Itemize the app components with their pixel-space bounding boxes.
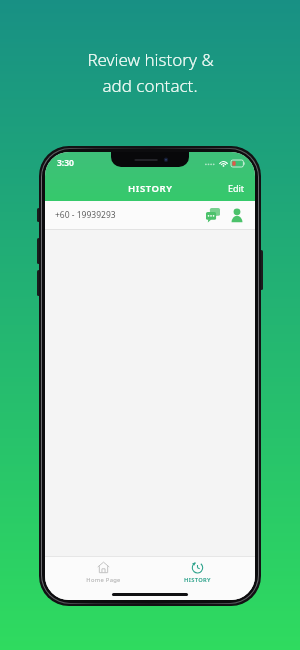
button[interactable]: Message [203,205,223,225]
staticText: Review history & [87,48,214,71]
staticText: Home Page [86,576,121,584]
staticText: HISTORY [184,576,211,584]
button[interactable]: +60 - 19939293 [45,201,255,229]
button[interactable]: HISTORY [162,559,232,586]
button[interactable]: Edit [218,178,255,198]
button[interactable]: Add contact [227,205,247,225]
staticText: Edit [228,182,245,194]
staticText: +60 - 19939293 [55,209,116,221]
button[interactable]: Home Page [68,559,138,586]
staticText: HISTORY [128,182,173,195]
staticText: add contact. [102,74,198,97]
staticText: 3:30 [57,157,74,169]
